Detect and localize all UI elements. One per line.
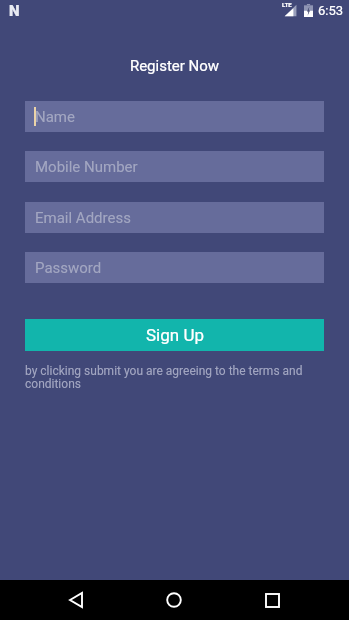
staticText: Name — [35, 108, 75, 126]
button[interactable]: Recent apps — [250, 580, 294, 620]
button[interactable]: Mobile Number — [25, 151, 324, 182]
staticText: Sign Up — [146, 325, 204, 345]
staticText: by clicking submit you are agreeing to t… — [25, 364, 325, 391]
button[interactable]: Sign Up — [25, 319, 324, 351]
staticText: Email Address — [35, 209, 131, 227]
button[interactable]: Home — [152, 580, 196, 620]
button[interactable]: Back — [54, 580, 98, 620]
button[interactable]: Name — [25, 101, 324, 132]
staticText: Password — [35, 259, 102, 277]
staticText: LTE — [282, 1, 292, 8]
staticText: Mobile Number — [35, 158, 138, 176]
button[interactable]: Email Address — [25, 202, 324, 233]
staticText: Register Now — [0, 57, 349, 75]
button[interactable]: Password — [25, 252, 324, 283]
staticText: N — [9, 2, 20, 18]
staticText: 6:53 — [318, 3, 344, 18]
